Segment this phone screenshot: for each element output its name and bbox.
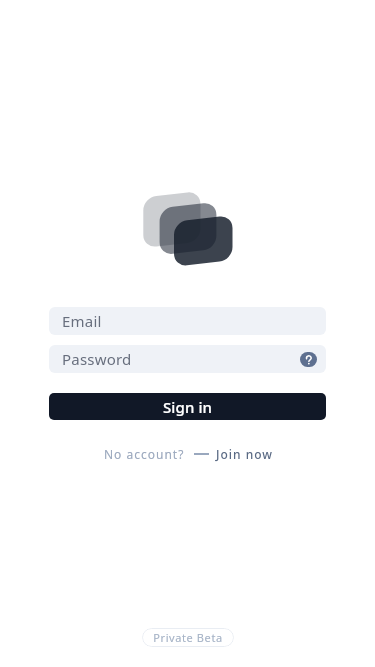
staticText: No account? (104, 446, 185, 462)
button[interactable]: Private Beta (142, 628, 234, 647)
staticText: Join now (216, 446, 273, 462)
button[interactable]: Password help (300, 352, 317, 367)
button[interactable]: Password (49, 345, 326, 373)
staticText: Email (62, 311, 102, 331)
other: App logo (142, 190, 237, 270)
staticText: Sign in (163, 397, 213, 417)
button[interactable]: Join now (216, 446, 273, 462)
staticText: Private Beta (153, 630, 223, 645)
button[interactable]: Email (49, 307, 326, 335)
button[interactable]: Sign in (49, 393, 326, 420)
staticText: Password (62, 349, 132, 369)
